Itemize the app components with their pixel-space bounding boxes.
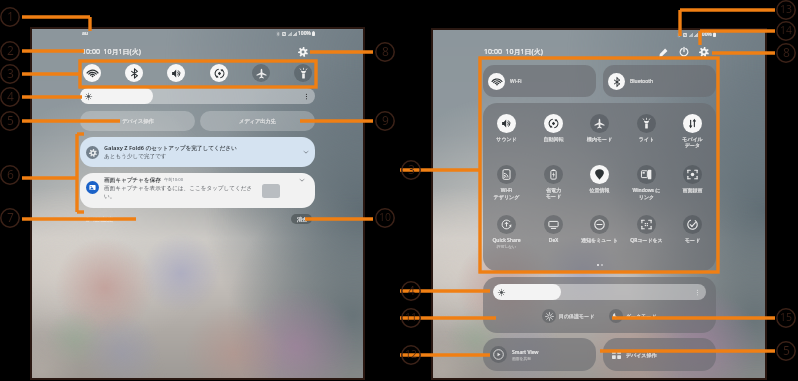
staticText: QRコードをス: [625, 237, 668, 244]
staticText: 画面キャプチャを表示するには、ここをタップしてください。: [104, 185, 256, 200]
button[interactable]: Wi-Fi: [483, 65, 596, 97]
button[interactable]: Settings: [697, 46, 710, 58]
staticText: デバイス操作: [122, 118, 154, 125]
button[interactable]: サウンド: [485, 114, 528, 142]
staticText: 3: [7, 65, 14, 81]
staticText: Bluetooth: [630, 78, 654, 85]
staticText: 自動回転: [532, 136, 575, 142]
staticText: 15: [780, 310, 793, 324]
staticText: 6: [7, 166, 14, 182]
button[interactable]: Settings: [297, 46, 309, 58]
staticText: 100%: [699, 31, 712, 38]
staticText: 4: [408, 282, 415, 298]
button[interactable]: Windows に リンク: [625, 165, 668, 200]
staticText: モバイル データ: [671, 136, 714, 148]
staticText: Wi-Fi: [510, 78, 522, 85]
staticText: au: [82, 30, 88, 37]
button[interactable]: 省電力 モード: [532, 165, 575, 199]
staticText: 目の保護モード: [559, 313, 595, 319]
button[interactable]: ライト: [625, 114, 668, 142]
button[interactable]: Smart View: [483, 338, 596, 371]
button[interactable]: 機内モード: [578, 114, 621, 142]
staticText: 午前10:00: [164, 177, 184, 183]
button[interactable]: ダークモード: [609, 309, 657, 323]
button[interactable]: 消去: [291, 214, 312, 224]
button[interactable]: デバイス操作: [80, 111, 195, 131]
staticText: 5: [7, 112, 14, 128]
staticText: ライト: [625, 136, 668, 142]
button[interactable]: Sound: [167, 64, 185, 82]
button[interactable]: 位置情報: [578, 165, 621, 193]
staticText: 画面キャプチャを保存: [104, 177, 161, 184]
button[interactable]: 通知をミュー ト: [578, 215, 621, 244]
button[interactable]: 自動回転: [532, 114, 575, 142]
button[interactable]: Flashlight: [294, 64, 312, 82]
button[interactable]: 画面録画: [671, 165, 714, 193]
staticText: 5: [783, 342, 790, 358]
staticText: あともう少しで完了です: [104, 153, 167, 160]
staticText: 9: [382, 112, 389, 128]
staticText: Smart View: [512, 349, 539, 356]
button[interactable]: DeX: [532, 215, 575, 244]
button[interactable]: Edit: [657, 46, 670, 58]
staticText: 10:00 10月1日(火): [484, 47, 543, 57]
staticText: 3: [408, 161, 415, 177]
staticText: 許可しない: [485, 244, 528, 249]
button[interactable]: Quick Share: [485, 215, 528, 249]
staticText: 8: [382, 43, 389, 59]
button[interactable]: Wi-Fi テザリング: [485, 165, 528, 200]
button[interactable]: Airplane mode: [252, 64, 270, 82]
button[interactable]: Galaxy Z Fold6 のセットアップを完了してください: [80, 137, 315, 167]
button[interactable]: QRコードをス: [625, 215, 668, 244]
staticText: DeX: [532, 237, 575, 244]
staticText: 13: [780, 2, 793, 16]
button[interactable]: メディア出力先: [200, 111, 315, 131]
staticText: 省電力 モード: [532, 187, 575, 199]
staticText: 機内モード: [578, 136, 621, 142]
staticText: 2: [7, 42, 14, 58]
staticText: 10:00 10月1日(火): [82, 47, 141, 57]
staticText: 7: [7, 209, 14, 225]
staticText: 1: [7, 8, 14, 24]
button[interactable]: 目の保護モード: [542, 309, 595, 323]
staticText: 画面を共有: [512, 356, 532, 361]
staticText: 14: [780, 23, 793, 37]
button[interactable]: Power: [677, 46, 690, 58]
staticText: 12: [405, 347, 418, 361]
button[interactable]: デバイス操作: [603, 338, 716, 371]
staticText: 通知をミュー ト: [578, 237, 621, 244]
button[interactable]: Bluetooth: [125, 64, 143, 82]
staticText: デバイス操作: [626, 352, 657, 358]
staticText: Galaxy Z Fold6 のセットアップを完了してください: [104, 144, 237, 152]
staticText: 10: [379, 210, 392, 224]
staticText: 画面録画: [671, 187, 714, 193]
button[interactable]: [80, 88, 315, 104]
staticText: メディア出力先: [239, 118, 276, 125]
staticText: Windows に リンク: [625, 187, 668, 200]
button[interactable]: モード: [671, 215, 714, 243]
staticText: Wi-Fi テザリング: [485, 187, 528, 200]
button[interactable]: モバイル データ: [671, 114, 714, 148]
staticText: 8: [783, 44, 790, 60]
button[interactable]: [493, 284, 706, 300]
staticText: Quick Share: [485, 237, 528, 244]
staticText: 4: [7, 88, 14, 104]
staticText: 100%: [298, 30, 311, 37]
staticText: ダークモード: [626, 313, 657, 319]
staticText: 11: [405, 310, 418, 324]
button[interactable]: 画面キャプチャを保存: [80, 173, 315, 208]
button[interactable]: Bluetooth: [603, 65, 716, 97]
button[interactable]: Auto rotate: [210, 64, 228, 82]
staticText: サウンド: [485, 136, 528, 142]
staticText: 消去: [297, 216, 307, 222]
staticText: モード: [671, 237, 714, 243]
staticText: 位置情報: [578, 187, 621, 193]
button[interactable]: Wi-Fi: [83, 64, 101, 82]
staticText: 通知設定: [93, 216, 113, 222]
